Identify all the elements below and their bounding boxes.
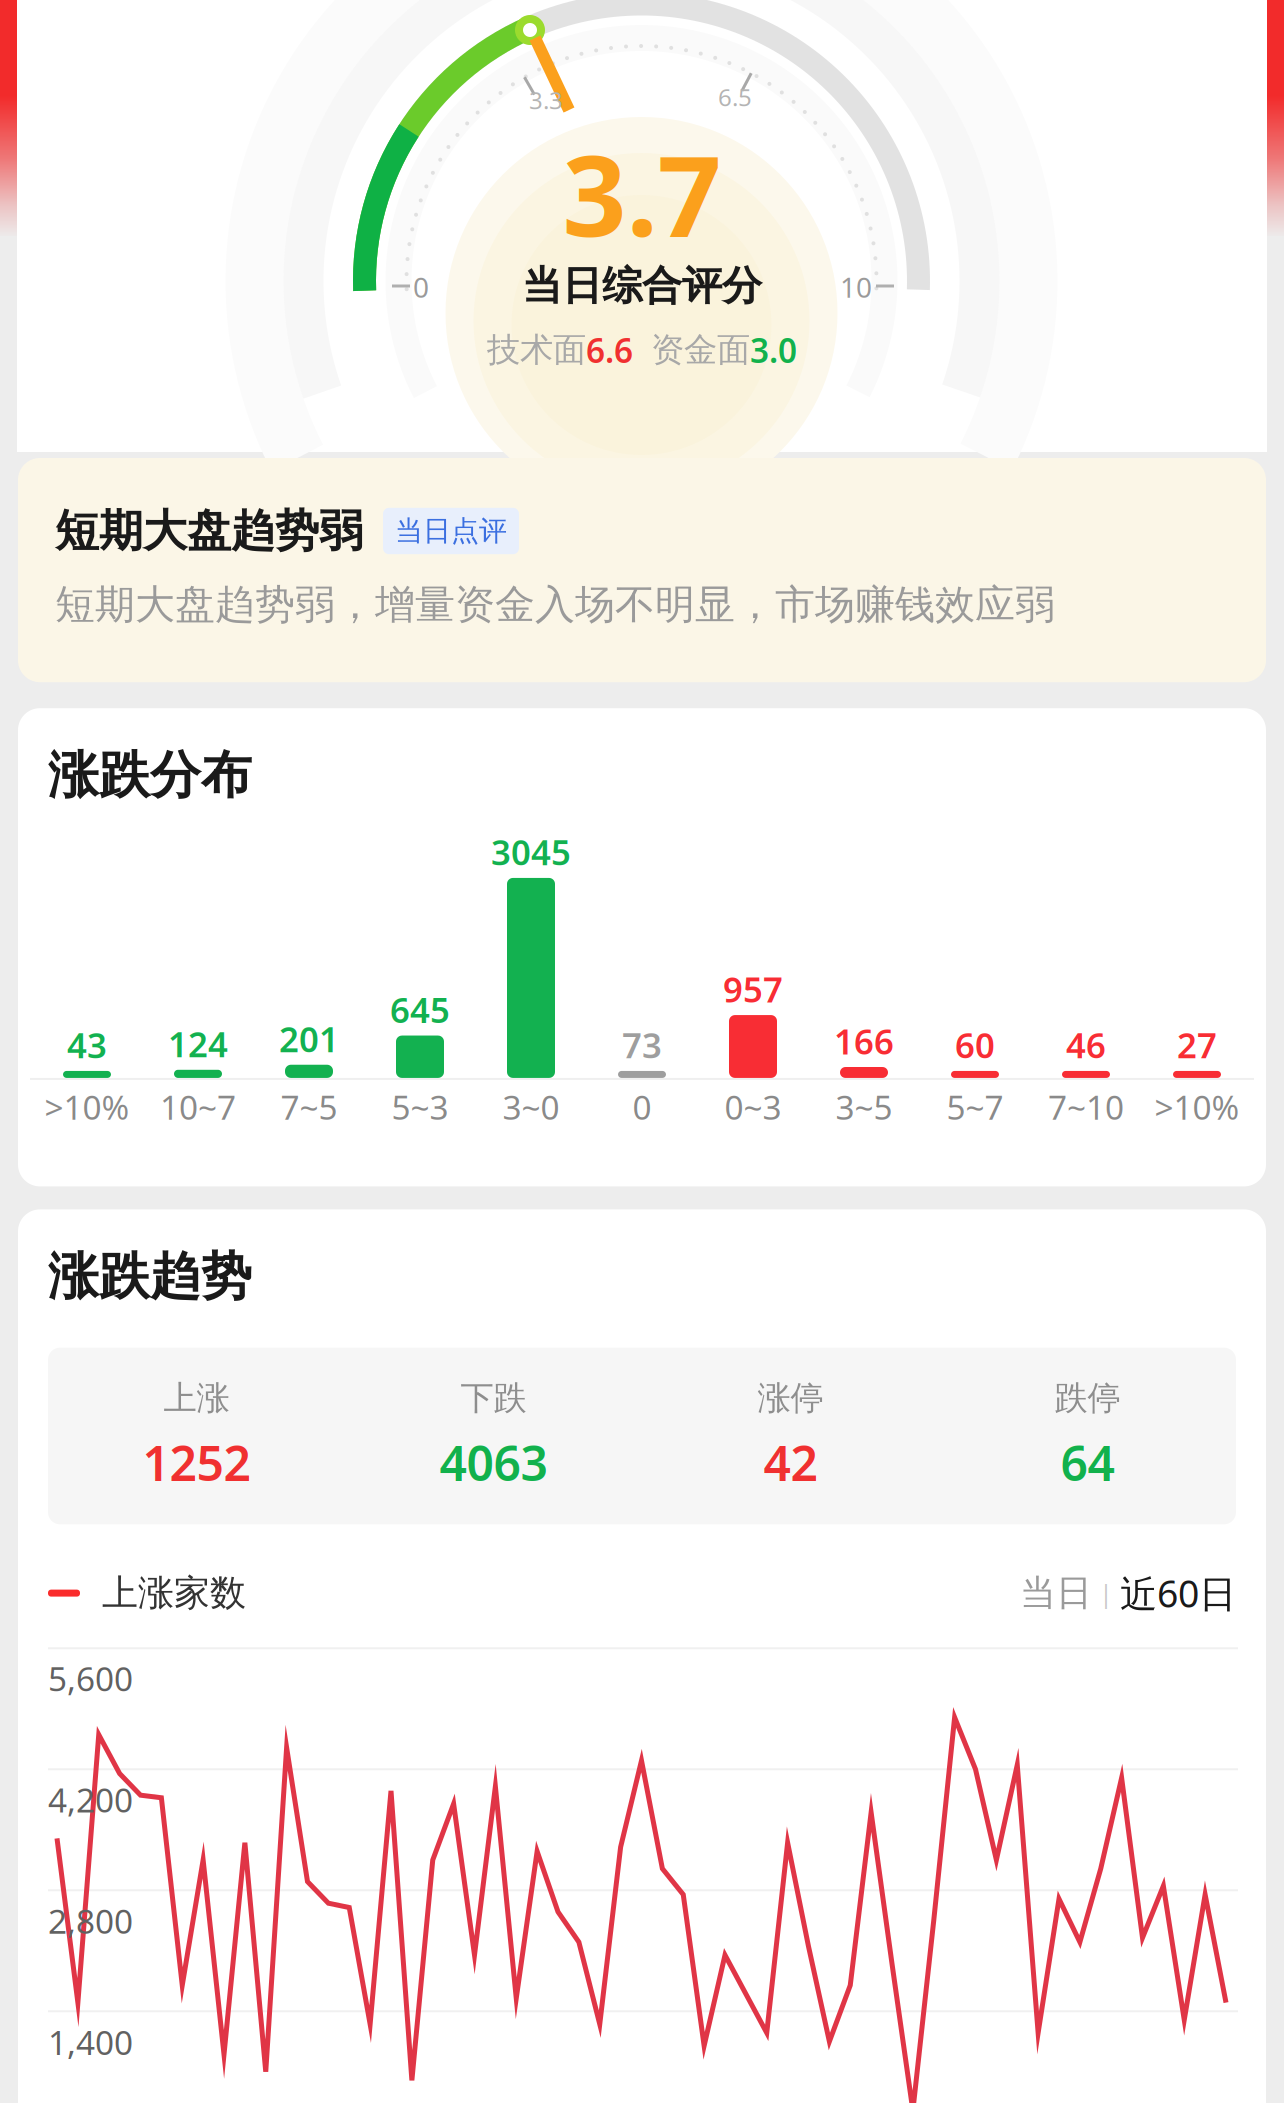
staticText: 5~3 bbox=[391, 1085, 448, 1129]
staticText: 3045 bbox=[491, 829, 571, 875]
staticText: 当日综合评分 bbox=[522, 261, 762, 310]
staticText: 124 bbox=[168, 1021, 228, 1067]
button[interactable]: 短期大盘趋势弱 bbox=[18, 458, 1266, 682]
staticText: 46 bbox=[1066, 1022, 1106, 1068]
staticText: 短期大盘趋势弱，增量资金入场不明显，市场赚钱效应弱 bbox=[55, 580, 1055, 629]
staticText: 上涨家数 bbox=[80, 1571, 246, 1615]
staticText: 64 bbox=[1060, 1431, 1114, 1494]
staticText: 43 bbox=[67, 1022, 107, 1068]
staticText: >10% bbox=[44, 1085, 129, 1129]
staticText: 下跌 bbox=[460, 1378, 526, 1418]
staticText: 涨停 bbox=[757, 1378, 823, 1418]
staticText: 4,200 bbox=[48, 1777, 133, 1822]
staticText: 2,800 bbox=[48, 1899, 133, 1943]
staticText: 645 bbox=[390, 986, 450, 1032]
staticText: 5~7 bbox=[946, 1085, 1003, 1129]
staticText: 10 bbox=[840, 268, 872, 306]
staticText: 60 bbox=[955, 1022, 995, 1068]
staticText: 近60日 bbox=[1120, 1568, 1236, 1618]
staticText: 5,600 bbox=[48, 1656, 133, 1700]
staticText: 3.3 bbox=[529, 84, 563, 116]
staticText: 7~5 bbox=[280, 1085, 337, 1129]
staticText: 3.0 bbox=[750, 328, 797, 372]
staticText: 短期大盘趋势弱 bbox=[55, 504, 363, 558]
staticText: 7~10 bbox=[1048, 1085, 1124, 1129]
staticText: 0 bbox=[632, 1085, 651, 1129]
staticText: 0 bbox=[413, 268, 429, 306]
staticText: 4063 bbox=[439, 1431, 547, 1494]
staticText: 3~0 bbox=[502, 1085, 559, 1129]
staticText: >10% bbox=[1154, 1085, 1239, 1129]
staticText: 3.7 bbox=[562, 119, 721, 267]
staticText: 当日点评 bbox=[395, 514, 507, 548]
staticText: 166 bbox=[834, 1018, 894, 1064]
staticText: 6.5 bbox=[718, 81, 752, 113]
staticText: 42 bbox=[763, 1431, 817, 1494]
staticText: 上涨 bbox=[163, 1378, 229, 1418]
staticText: 957 bbox=[723, 966, 783, 1012]
staticText: | bbox=[1092, 1576, 1120, 1610]
staticText: 涨跌分布 bbox=[48, 744, 252, 806]
staticText: 涨跌趋势 bbox=[48, 1245, 252, 1308]
staticText: 1,400 bbox=[48, 2020, 133, 2064]
staticText: 跌停 bbox=[1054, 1378, 1120, 1418]
staticText: 201 bbox=[279, 1016, 339, 1062]
staticText: 73 bbox=[622, 1022, 662, 1068]
staticText: 6.6 bbox=[586, 328, 633, 372]
staticText: 27 bbox=[1177, 1022, 1217, 1068]
staticText: 技术面 bbox=[487, 329, 586, 370]
staticText: 资金面 bbox=[651, 329, 750, 370]
staticText: 3~5 bbox=[835, 1085, 892, 1129]
staticText: 当日 bbox=[1020, 1571, 1092, 1615]
staticText: 1252 bbox=[142, 1431, 250, 1494]
staticText: 10~7 bbox=[160, 1085, 236, 1129]
button[interactable]: 当日 bbox=[1020, 1571, 1092, 1615]
staticText: 0~3 bbox=[724, 1085, 781, 1129]
button[interactable]: 近60日 bbox=[1120, 1568, 1236, 1618]
